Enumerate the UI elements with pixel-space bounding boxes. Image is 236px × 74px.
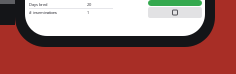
staticText: 20 [87,2,91,7]
button[interactable]: Days bred [29,1,113,8]
staticText: 1 [87,10,89,15]
button[interactable]: Add record [148,7,202,18]
button[interactable]: # inseminations [29,9,113,16]
staticText: # inseminations [29,10,57,15]
staticText: Days bred [29,2,47,7]
